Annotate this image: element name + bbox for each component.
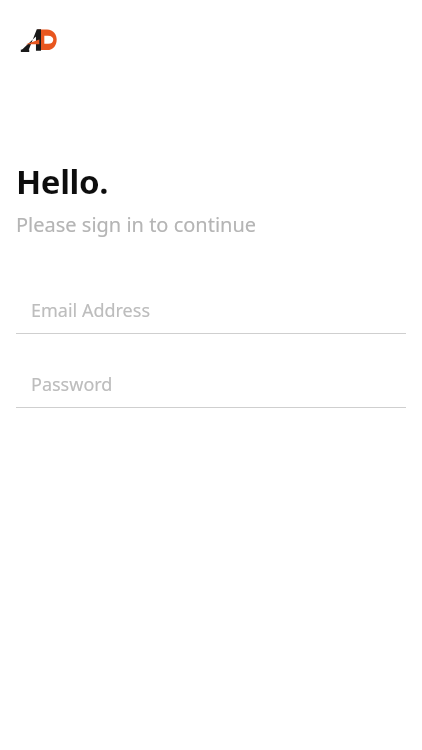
staticText: Password: [31, 372, 113, 397]
staticText: Email Address: [31, 298, 151, 323]
button[interactable]: Password: [16, 362, 406, 408]
other: AD logo: [20, 28, 62, 52]
staticText: Please sign in to continue: [16, 211, 257, 238]
staticText: Hello.: [16, 159, 109, 204]
button[interactable]: Email Address: [16, 288, 406, 334]
